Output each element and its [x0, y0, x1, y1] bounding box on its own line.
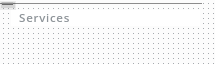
button[interactable]: Services — [11, 10, 200, 26]
staticText: Services — [19, 10, 71, 26]
other: Scroll bar — [0, 0, 215, 64]
